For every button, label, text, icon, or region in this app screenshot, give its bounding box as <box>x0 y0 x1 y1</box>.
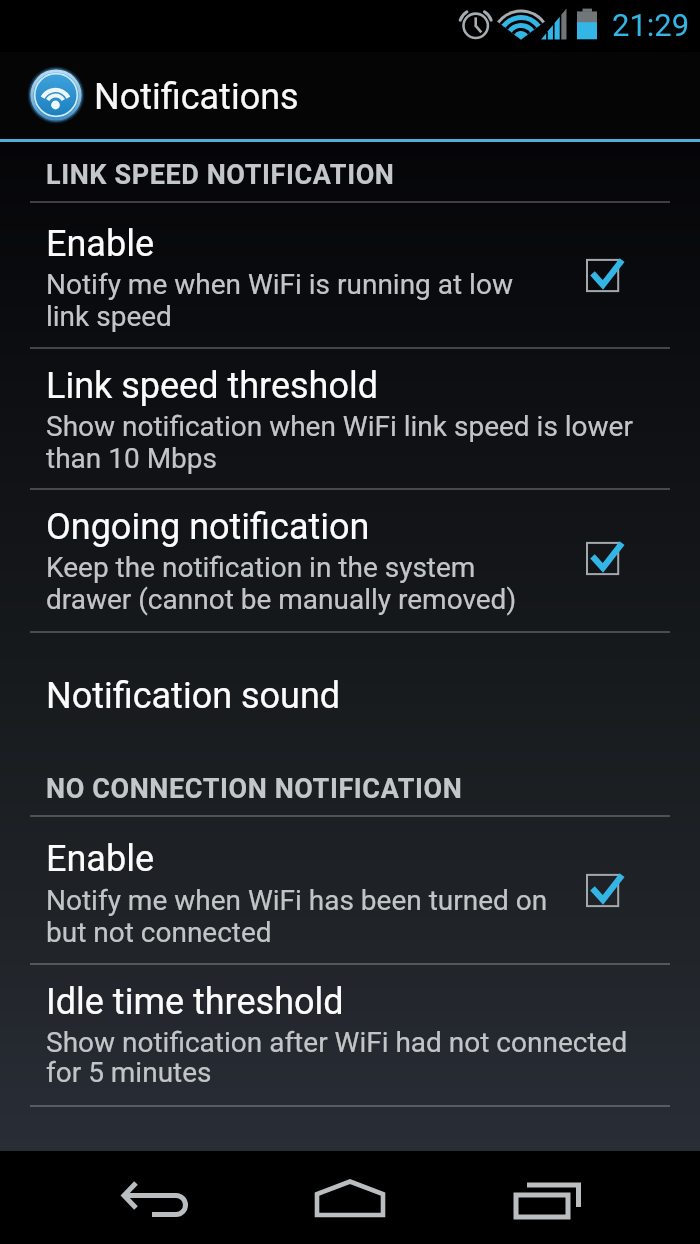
staticText: for 5 minutes <box>46 1056 212 1089</box>
staticText: drawer (cannot be manually removed) <box>46 583 517 616</box>
staticText: LINK SPEED NOTIFICATION <box>46 159 395 191</box>
staticText: than 10 Mbps <box>46 442 217 475</box>
staticText: Show notification after WiFi had not con… <box>46 1026 628 1059</box>
staticText: Idle time threshold <box>46 981 344 1023</box>
staticText: Enable <box>46 838 154 880</box>
button[interactable]: Idle time threshold <box>0 963 700 1105</box>
staticText: Ongoing notification <box>46 506 370 548</box>
button[interactable]: Home <box>234 1151 467 1244</box>
staticText: Show notification when WiFi link speed i… <box>46 410 633 443</box>
staticText: Link speed threshold <box>46 365 378 407</box>
staticText: Notifications <box>94 76 299 118</box>
staticText: 21:29 <box>612 7 690 43</box>
staticText: Notify me when WiFi is running at low <box>46 268 513 301</box>
button[interactable]: Enable <box>0 201 700 347</box>
button[interactable]: Notification sound <box>0 631 700 746</box>
button[interactable]: Recent apps <box>467 1151 700 1244</box>
staticText: NO CONNECTION NOTIFICATION <box>46 773 463 805</box>
button[interactable]: Ongoing notification <box>0 488 700 631</box>
button[interactable]: Wi-Fi app icon <box>26 66 86 126</box>
staticText: Notify me when WiFi has been turned on <box>46 884 548 917</box>
staticText: but not connected <box>46 916 272 949</box>
staticText: Enable <box>46 223 154 265</box>
button[interactable]: Enable <box>0 815 700 963</box>
button[interactable]: Link speed threshold <box>0 347 700 488</box>
staticText: link speed <box>46 300 172 333</box>
button[interactable]: Back <box>0 1151 234 1244</box>
staticText: Notification sound <box>46 675 341 717</box>
staticText: Keep the notification in the system <box>46 551 476 584</box>
